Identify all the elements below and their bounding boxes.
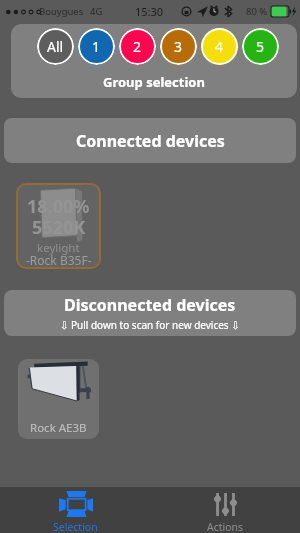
staticText: 15:30 <box>135 4 164 19</box>
staticText: 4G <box>90 5 103 18</box>
button[interactable]: Group 1 <box>78 28 115 65</box>
other: Actions <box>215 493 236 516</box>
staticText: Connected devices <box>76 130 225 152</box>
button[interactable]: 18.00% <box>16 183 101 269</box>
staticText: 1 <box>92 37 101 56</box>
staticText: ⇩ Pull down to scan for new devices ⇩ <box>60 318 240 332</box>
staticText: All <box>47 37 64 56</box>
staticText: 3 <box>174 37 183 56</box>
button[interactable]: Group All <box>37 28 74 65</box>
button[interactable]: Group 2 <box>119 28 156 65</box>
staticText: 5520K <box>32 215 86 240</box>
staticText: Group selection <box>103 73 205 91</box>
staticText: Selection <box>53 520 98 533</box>
staticText: 18.00% <box>27 194 90 219</box>
button[interactable]: Rock AE3B <box>18 359 99 439</box>
other: Selection <box>59 491 93 517</box>
staticText: keylight <box>37 240 80 256</box>
staticText: 4 <box>215 37 224 56</box>
button[interactable]: Selection <box>0 487 150 533</box>
staticText: 2 <box>133 37 142 56</box>
button[interactable]: Group 5 <box>242 28 279 65</box>
staticText: 5 <box>256 37 265 56</box>
staticText: Bouygues <box>39 5 84 18</box>
button[interactable]: Group 4 <box>201 28 238 65</box>
button[interactable]: Actions <box>150 487 300 533</box>
staticText: Actions <box>207 520 244 533</box>
button[interactable]: Connected devices <box>4 118 296 163</box>
staticText: Disconnected devices <box>64 294 236 316</box>
button[interactable]: Group 3 <box>160 28 197 65</box>
staticText: Rock AE3B <box>30 420 87 436</box>
staticText: 80 % <box>246 5 268 18</box>
staticText: -Rock B35F- <box>26 252 92 268</box>
button[interactable]: Disconnected devices <box>4 290 296 336</box>
